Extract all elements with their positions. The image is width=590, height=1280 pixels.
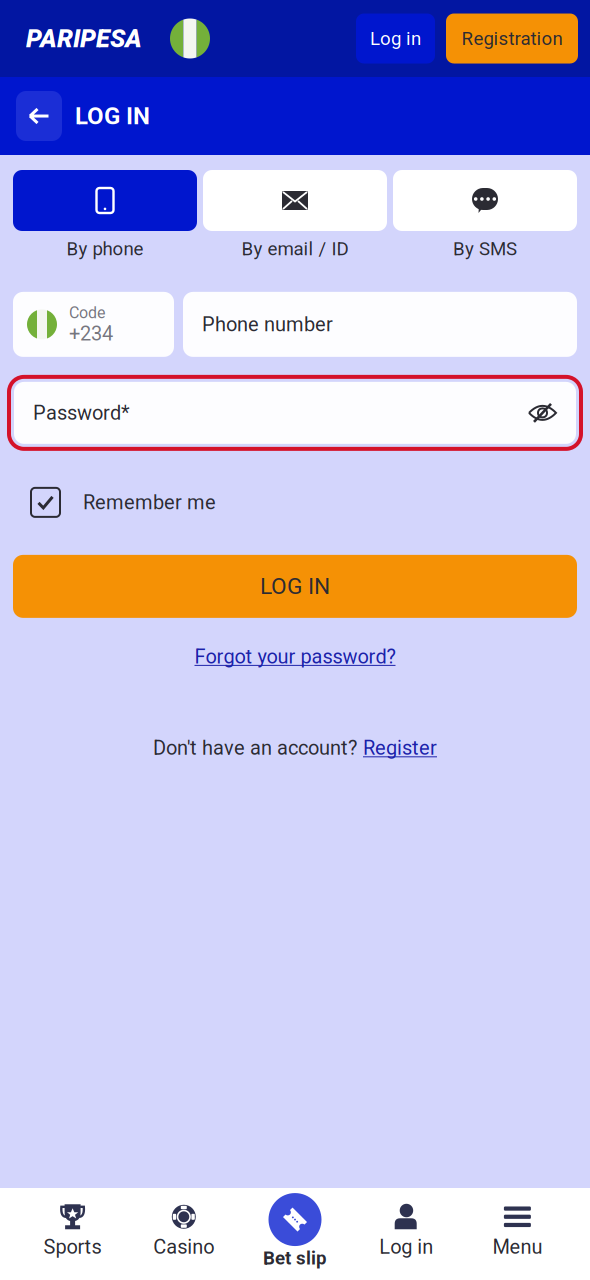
button[interactable]: PARIPESA (26, 18, 210, 58)
staticText: Casino (153, 1235, 214, 1259)
staticText: Code (69, 303, 105, 322)
button[interactable]: Password* (9, 377, 581, 449)
staticText: LOG IN (260, 573, 330, 600)
staticText: LOG IN (75, 102, 150, 130)
staticText: Phone number (202, 313, 333, 336)
staticText: By phone (66, 238, 143, 260)
button[interactable]: Menu (462, 1203, 573, 1259)
staticText: +234 (69, 322, 113, 345)
staticText: By SMS (453, 238, 517, 260)
staticText: Log in (370, 28, 421, 49)
button[interactable]: Register (363, 736, 437, 760)
button[interactable]: Sports (17, 1203, 128, 1259)
button[interactable]: Log in (351, 1203, 462, 1259)
button[interactable]: Bet slip (239, 1193, 351, 1269)
staticText: Menu (492, 1235, 542, 1259)
staticText: Don't have an account? (153, 736, 357, 760)
button[interactable]: LOG IN (13, 555, 577, 618)
staticText: Register (363, 736, 437, 760)
button[interactable]: Registration (446, 13, 578, 63)
button[interactable]: Phone number (183, 292, 577, 357)
button[interactable]: Log in (356, 13, 435, 63)
button[interactable]: By email / ID (203, 170, 387, 260)
staticText: Password* (33, 401, 130, 425)
button[interactable]: Casino (128, 1203, 239, 1259)
button[interactable]: Forgot your password? (194, 645, 395, 668)
button[interactable]: By phone (13, 170, 197, 260)
staticText: Registration (461, 28, 562, 49)
staticText: Remember me (83, 491, 216, 514)
staticText: By email / ID (241, 238, 348, 260)
staticText: Forgot your password? (194, 645, 395, 668)
staticText: Sports (44, 1235, 102, 1259)
staticText: Bet slip (263, 1247, 327, 1269)
button[interactable]: Back (16, 91, 62, 141)
staticText: Log in (379, 1235, 433, 1259)
button[interactable]: Remember me (31, 488, 216, 517)
staticText: PARIPESA (26, 24, 142, 53)
button[interactable]: By SMS (393, 170, 577, 260)
button[interactable]: Code (13, 292, 174, 357)
